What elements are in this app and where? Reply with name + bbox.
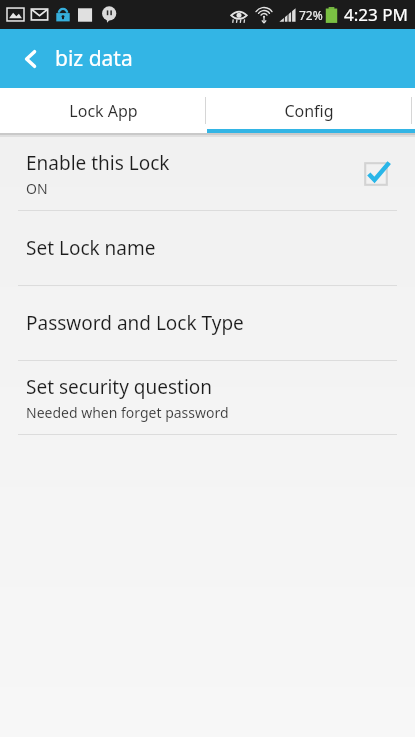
staticText: 4:23 PM [344,3,408,26]
staticText: Needed when forget password [26,403,229,422]
button[interactable]: Enable this Lock checkbox [359,157,393,191]
staticText: Enable this Lock [26,150,170,176]
staticText: Password and Lock Type [26,310,244,336]
staticText: ON [26,179,48,198]
button[interactable]: Lock App [0,88,206,133]
button[interactable]: Set security question [0,361,415,434]
staticText: Config [284,100,334,122]
button[interactable]: Password and Lock Type [0,286,415,360]
staticText: Set Lock name [26,235,156,261]
other: Navigate up [18,46,44,72]
button[interactable]: Set Lock name [0,211,415,285]
staticText: Set security question [26,374,213,400]
staticText: biz data [55,44,133,73]
button[interactable]: Config [206,88,412,133]
staticText: Lock App [69,100,138,122]
button[interactable]: Enable this Lock [0,137,415,210]
button[interactable]: Navigate up [0,29,145,88]
staticText: 72% [299,7,323,23]
